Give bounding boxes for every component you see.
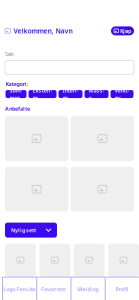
- button[interactable]: Produkt: [71, 116, 134, 161]
- button[interactable]: Masse: [84, 90, 108, 98]
- staticText: Favoritter: [41, 285, 66, 293]
- button[interactable]: Nylig sett: [5, 223, 57, 238]
- staticText: Kjøp: [120, 27, 131, 34]
- button[interactable]: Interiør: [58, 90, 82, 98]
- button[interactable]: Produkt: [108, 244, 139, 277]
- button[interactable]: Melding: [70, 277, 105, 300]
- button[interactable]: Produkt: [5, 116, 68, 161]
- staticText: Kategori:: [5, 80, 27, 88]
- staticText: Masse: [88, 87, 104, 101]
- staticText: Velkommen, Navn: [13, 26, 72, 35]
- button[interactable]: Profil: [105, 277, 139, 300]
- button[interactable]: Verktøy: [110, 90, 133, 98]
- button[interactable]: Favoritter: [36, 277, 70, 300]
- staticText: Verktøy: [114, 87, 129, 101]
- button[interactable]: Logo Forside: [2, 277, 36, 300]
- staticText: Sommer: [9, 87, 22, 101]
- staticText: Nylig sett: [11, 227, 36, 234]
- staticText: Søk: [5, 50, 14, 57]
- staticText: Interiør: [62, 87, 78, 101]
- button[interactable]: Eksteriør: [28, 90, 56, 98]
- staticText: Anbefalte: [5, 105, 30, 112]
- button[interactable]: Produkt: [71, 167, 134, 212]
- staticText: Eksteriør: [32, 87, 52, 101]
- staticText: Profil: [115, 285, 128, 293]
- button[interactable]: Produkt: [5, 244, 36, 277]
- button[interactable]: Kjøp: [111, 26, 134, 35]
- staticText: Melding: [77, 285, 98, 293]
- button[interactable]: Produkt: [5, 167, 68, 212]
- button[interactable]: Produkt: [39, 244, 70, 277]
- button[interactable]: Sommer: [5, 90, 26, 98]
- staticText: Logo Forside: [3, 285, 35, 293]
- button[interactable]: Produkt: [74, 244, 105, 277]
